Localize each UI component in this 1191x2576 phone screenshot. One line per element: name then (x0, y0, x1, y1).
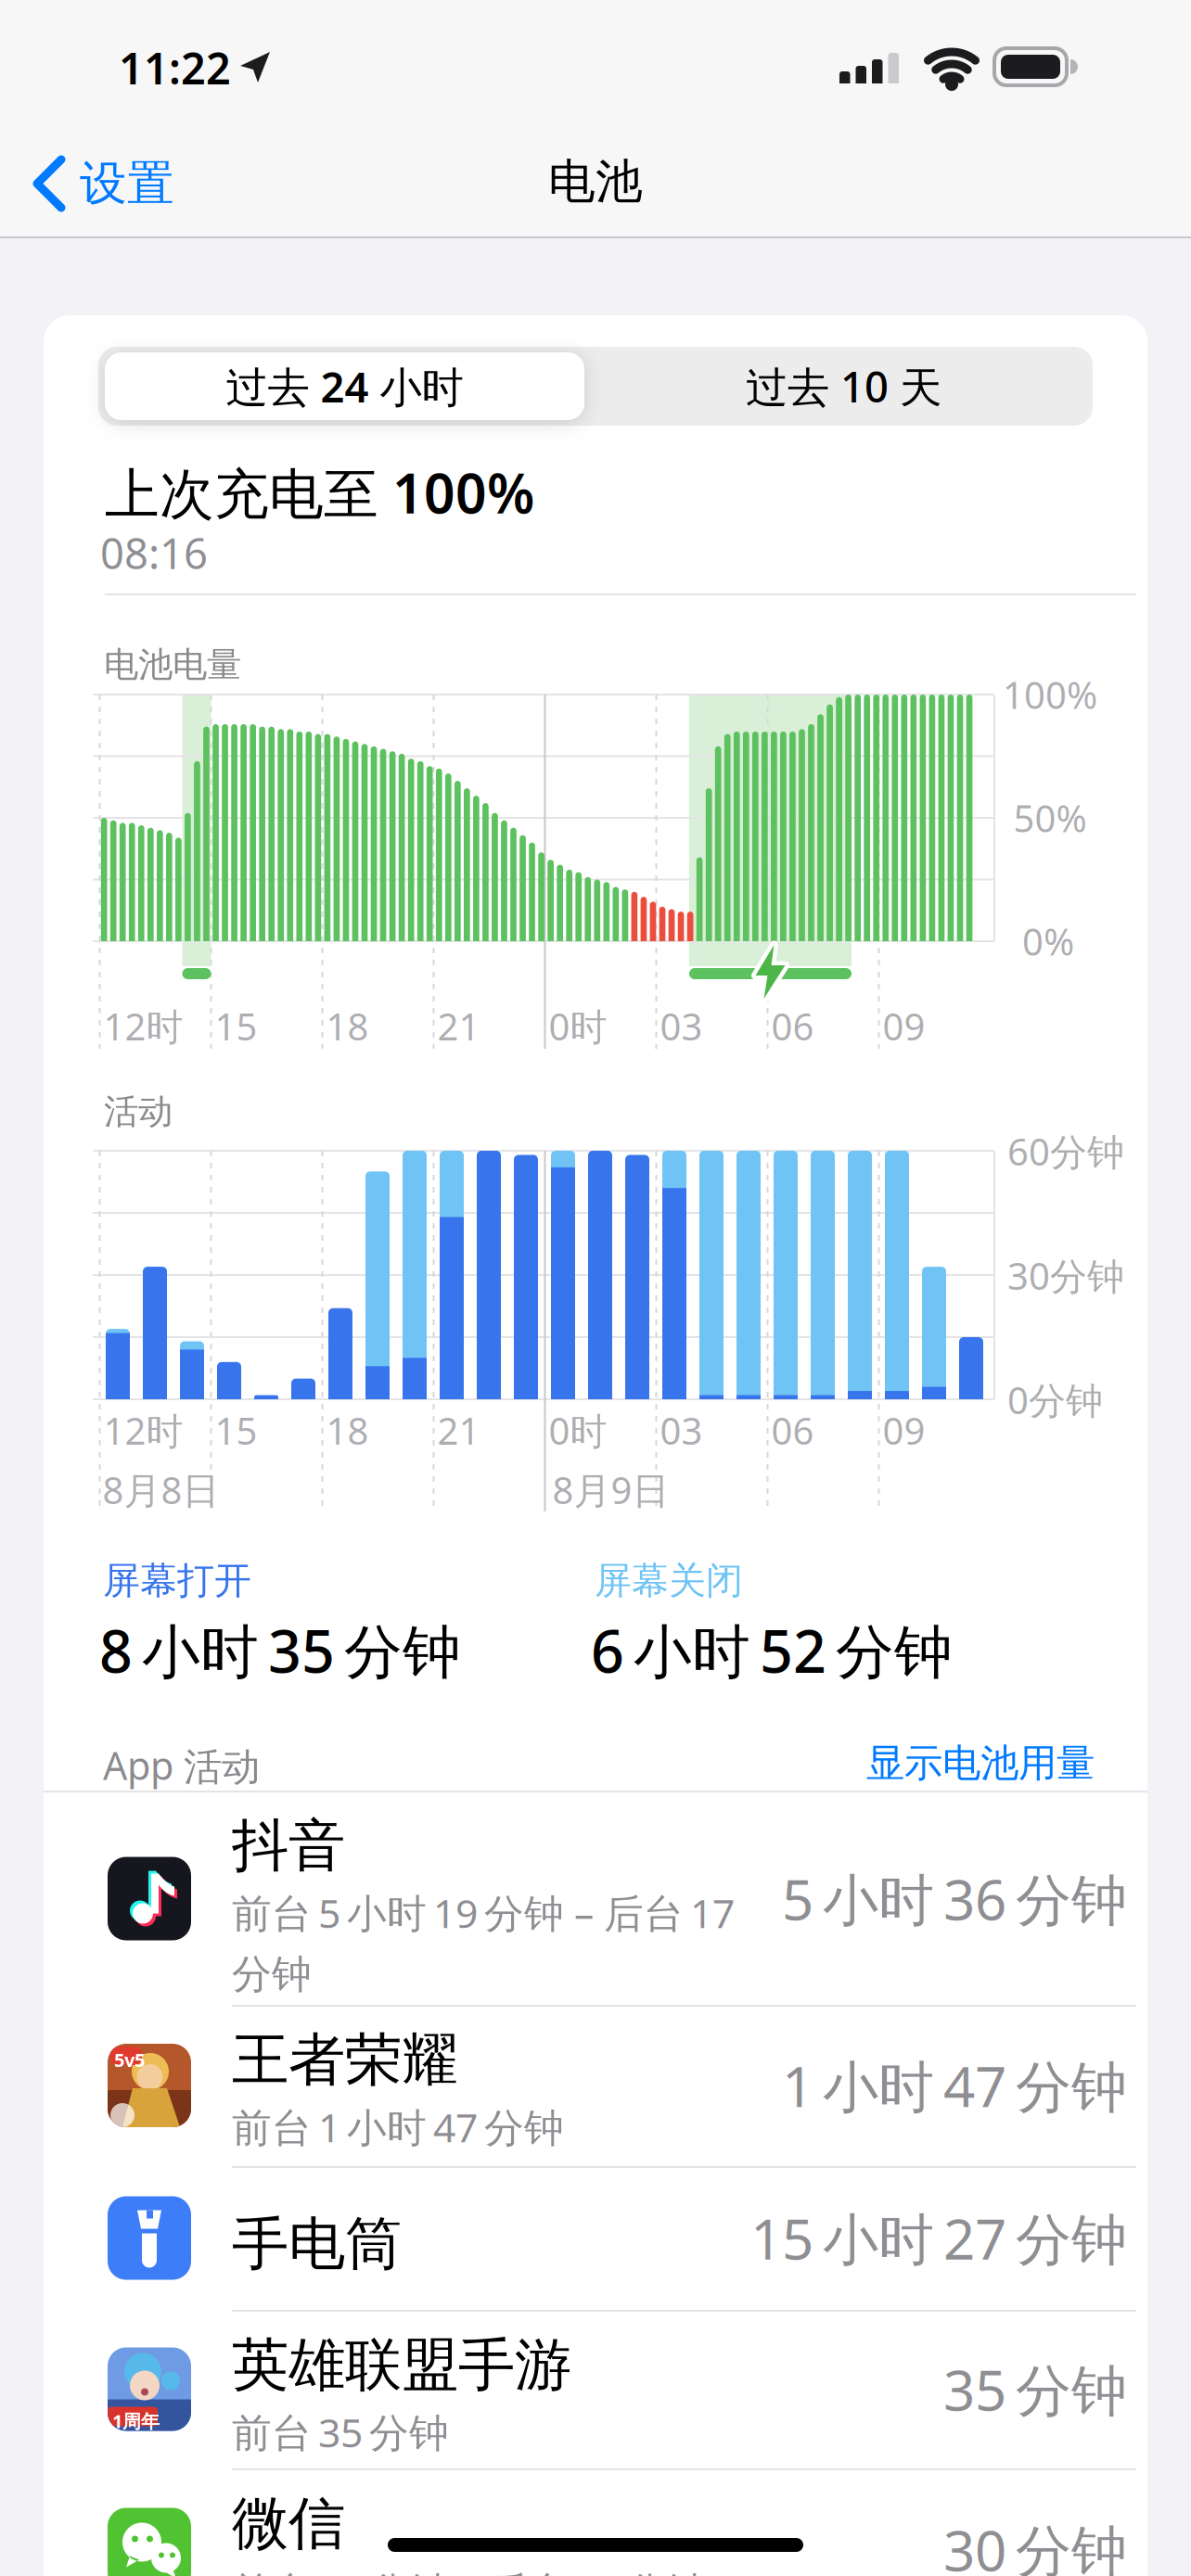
staticText: 过去 24 小时 (226, 358, 463, 414)
staticText: 抖音 (232, 1811, 345, 1881)
staticText: 03 (660, 1406, 703, 1455)
staticText: 屏幕打开 (103, 1558, 251, 1603)
staticText: 09 (883, 1001, 925, 1051)
staticText: 1周年 (112, 2409, 160, 2433)
staticText: 50% (1013, 793, 1087, 842)
staticText: 前台 5 小时 19 分钟 – 后台 17 分钟 (232, 1886, 735, 1999)
staticText: 8月8日 (102, 1465, 219, 1514)
staticText: 活动 (104, 1090, 173, 1133)
staticText: 100% (1003, 670, 1097, 719)
staticText: 前台 1 小时 47 分钟 (232, 2101, 564, 2153)
staticText: 30 分钟 (943, 2513, 1127, 2576)
staticText: 5 小时 36 分钟 (782, 1862, 1127, 1936)
button[interactable]: 抖音 (44, 1792, 1147, 2005)
staticText: 15 (215, 1406, 257, 1455)
button[interactable]: 5v5 (44, 2005, 1147, 2166)
button[interactable]: 过去 10 天 (595, 352, 1093, 420)
staticText: 06 (771, 1001, 814, 1051)
staticText: 60分钟 (1007, 1127, 1124, 1176)
staticText: 屏幕关闭 (595, 1558, 743, 1603)
staticText: 过去 10 天 (746, 358, 941, 414)
staticText: 12时 (103, 1001, 183, 1051)
button[interactable]: 1周年 (44, 2310, 1147, 2468)
staticText: 8 小时 35 分钟 (99, 1612, 461, 1689)
staticText: 6 小时 52 分钟 (591, 1612, 953, 1689)
staticText: 前台 14 分钟 – 后台 16 分钟 (232, 2564, 706, 2576)
staticText: 电池电量 (104, 644, 241, 686)
staticText: 09 (883, 1406, 925, 1455)
staticText: 手电筒 (232, 2209, 402, 2279)
staticText: 35 分钟 (943, 2352, 1127, 2426)
staticText: 08:16 (100, 525, 208, 581)
button[interactable]: 显示电池用量 (724, 1740, 1095, 1787)
staticText: 王者荣耀 (232, 2025, 458, 2095)
staticText: 前台 35 分钟 (232, 2406, 449, 2458)
staticText: 设置 (80, 155, 174, 212)
staticText: 12时 (103, 1406, 183, 1455)
staticText: 03 (660, 1001, 703, 1051)
staticText: 11:22 (119, 39, 231, 96)
staticText: App 活动 (103, 1740, 260, 1791)
staticText: 0% (1022, 917, 1074, 966)
staticText: 18 (326, 1001, 369, 1051)
staticText: 21 (437, 1406, 480, 1455)
staticText: 英雄联盟手游 (232, 2330, 571, 2400)
staticText: 21 (437, 1001, 480, 1051)
staticText: 30分钟 (1007, 1251, 1124, 1300)
staticText: 15 小时 27 分钟 (750, 2201, 1127, 2275)
staticText: 1 小时 47 分钟 (782, 2049, 1127, 2122)
staticText: 0分钟 (1007, 1375, 1103, 1424)
staticText: 18 (326, 1406, 369, 1455)
staticText: 上次充电至 100% (105, 456, 534, 528)
staticText: 电池 (548, 153, 643, 211)
button[interactable]: 过去 24 小时 (105, 352, 584, 420)
staticText: 8月9日 (552, 1465, 669, 1514)
button[interactable]: 设置 (37, 156, 174, 211)
button[interactable]: 手电筒 (44, 2166, 1147, 2310)
staticText: 5v5 (114, 2047, 145, 2072)
button[interactable]: 微信 (44, 2468, 1147, 2576)
staticText: 0时 (549, 1001, 607, 1051)
staticText: 微信 (232, 2489, 345, 2559)
staticText: 15 (215, 1001, 257, 1051)
staticText: 显示电池用量 (866, 1740, 1095, 1787)
staticText: 06 (771, 1406, 814, 1455)
staticText: 0时 (549, 1406, 607, 1455)
